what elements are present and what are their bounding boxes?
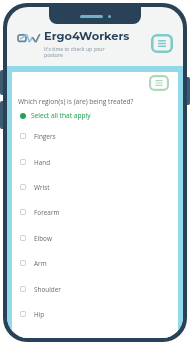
staticText: Hand	[34, 158, 51, 167]
button[interactable]: Hip	[12, 304, 178, 324]
staticText: Wrist	[34, 183, 50, 192]
staticText: Arm	[34, 259, 47, 268]
staticText: Select all that apply	[31, 111, 91, 120]
button[interactable]: Fingers	[12, 126, 178, 146]
button[interactable]: Elbow	[12, 228, 178, 248]
staticText: Forearm	[34, 208, 60, 217]
staticText: Fingers	[34, 132, 56, 141]
staticText: Which region(s) is (are) being treated?	[18, 97, 134, 106]
staticText: Hip	[34, 310, 45, 319]
staticText: Shoulder	[34, 285, 61, 294]
button[interactable]: Shoulder	[12, 279, 178, 299]
staticText: It's time to check up your posture	[44, 45, 105, 59]
button[interactable]: Hand	[12, 152, 178, 172]
button[interactable]: Forearm	[12, 202, 178, 222]
staticText: Elbow	[34, 234, 52, 243]
button[interactable]: Arm	[12, 253, 178, 273]
button[interactable]: Wrist	[12, 177, 178, 197]
button[interactable]: Menu	[149, 75, 169, 91]
staticText: Ergo4Workers	[44, 29, 130, 43]
button[interactable]: Menu	[151, 34, 173, 53]
